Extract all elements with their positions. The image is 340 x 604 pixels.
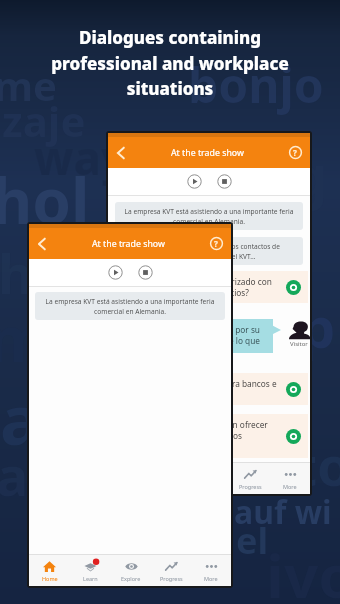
staticText: a <box>0 372 41 465</box>
staticText: ? <box>214 238 218 249</box>
staticText: Visitor <box>290 340 308 348</box>
staticText: Tenemos un buen software para bancos e i… <box>114 378 286 400</box>
staticText: More <box>204 575 218 582</box>
staticText: Explore <box>121 575 141 582</box>
staticText: g <box>290 134 328 216</box>
staticText: More <box>283 483 297 490</box>
button[interactable]: Explore <box>111 555 151 586</box>
staticText: Learn <box>83 575 98 582</box>
staticText: zaje <box>2 92 86 149</box>
button[interactable]: Learn <box>70 555 111 586</box>
staticText: At the trade show <box>92 238 165 250</box>
staticText: La empresa KVT está asistiendo a una imp… <box>121 207 297 225</box>
staticText: way <box>34 126 128 189</box>
button[interactable]: Progress <box>230 463 270 494</box>
staticText: Dialogues containing professional and wo… <box>51 26 289 100</box>
staticText: Todavía no, por su favor dígame lo que <box>120 324 260 346</box>
staticText: me <box>0 58 57 112</box>
staticText: Home <box>42 575 58 582</box>
button[interactable]: More <box>270 463 310 494</box>
staticText: el <box>236 516 269 565</box>
staticText: ma <box>0 296 86 380</box>
button[interactable]: Play audio <box>286 382 301 397</box>
staticText: Nosotros estamos centrados en ofrecer la… <box>114 419 286 453</box>
button[interactable]: More <box>191 555 231 586</box>
staticText: hol <box>0 158 90 242</box>
staticText: Progress <box>239 483 262 490</box>
staticText: ? <box>293 147 297 158</box>
button[interactable]: Home <box>29 555 70 586</box>
button[interactable]: Stop <box>217 174 232 189</box>
staticText: Progress <box>160 575 183 582</box>
staticText: h <box>0 236 34 310</box>
button[interactable]: Back <box>108 137 134 168</box>
staticText: etto <box>238 428 340 502</box>
button[interactable]: Play <box>187 174 202 189</box>
staticText: At the trade show <box>171 147 244 159</box>
staticText: bonjo <box>188 52 324 117</box>
button[interactable]: Play <box>108 265 123 280</box>
button[interactable]: Progress <box>151 555 191 586</box>
button[interactable]: Help <box>201 228 231 259</box>
staticText: av <box>0 438 60 512</box>
button[interactable]: Play audio <box>286 280 301 295</box>
staticText: Su objetivo es establecer nuevos contact… <box>121 242 297 260</box>
staticText: p <box>300 288 336 364</box>
staticText: La empresa KVT está asistiendo a una imp… <box>41 297 219 315</box>
button[interactable]: Help <box>280 137 310 168</box>
button[interactable]: Stop <box>138 265 153 280</box>
staticText: auf wi <box>234 490 332 534</box>
button[interactable]: Back <box>29 228 55 259</box>
button[interactable]: Play audio <box>286 429 301 444</box>
staticText: ¿Ya se encuentra usted familiarizado con… <box>114 276 286 298</box>
